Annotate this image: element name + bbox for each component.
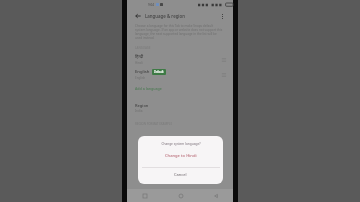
button[interactable]: Region [127,101,233,115]
button[interactable]: हिन्दी [127,52,233,67]
staticText: REGION FORMAT EXAMPLE [135,122,173,126]
staticText: LANGUAGE [135,46,151,50]
staticText: English [135,69,150,75]
staticText: Change to Hindi [165,153,197,159]
staticText: Choose a language for this Tab to make S… [135,24,223,40]
button[interactable]: Add a language [127,82,233,95]
staticText: Default [154,70,164,74]
button[interactable]: Home [163,189,198,202]
staticText: Change system language? [161,142,201,146]
button[interactable]: English [127,67,233,82]
staticText: English [135,76,146,80]
staticText: Language & region [145,13,185,19]
button[interactable]: Cancel [138,168,223,181]
button[interactable]: More options [217,11,227,21]
staticText: Region [135,103,149,108]
button[interactable]: Change to Hindi [138,151,223,161]
staticText: Add a language [135,86,162,91]
staticText: Cancel [174,172,187,177]
staticText: India [135,109,143,113]
button[interactable]: Back [133,11,143,21]
staticText: हिन्दी [135,54,144,60]
staticText: Hindi [135,61,143,65]
staticText: 9:04 [148,3,154,7]
button[interactable]: Recent apps [127,189,163,202]
